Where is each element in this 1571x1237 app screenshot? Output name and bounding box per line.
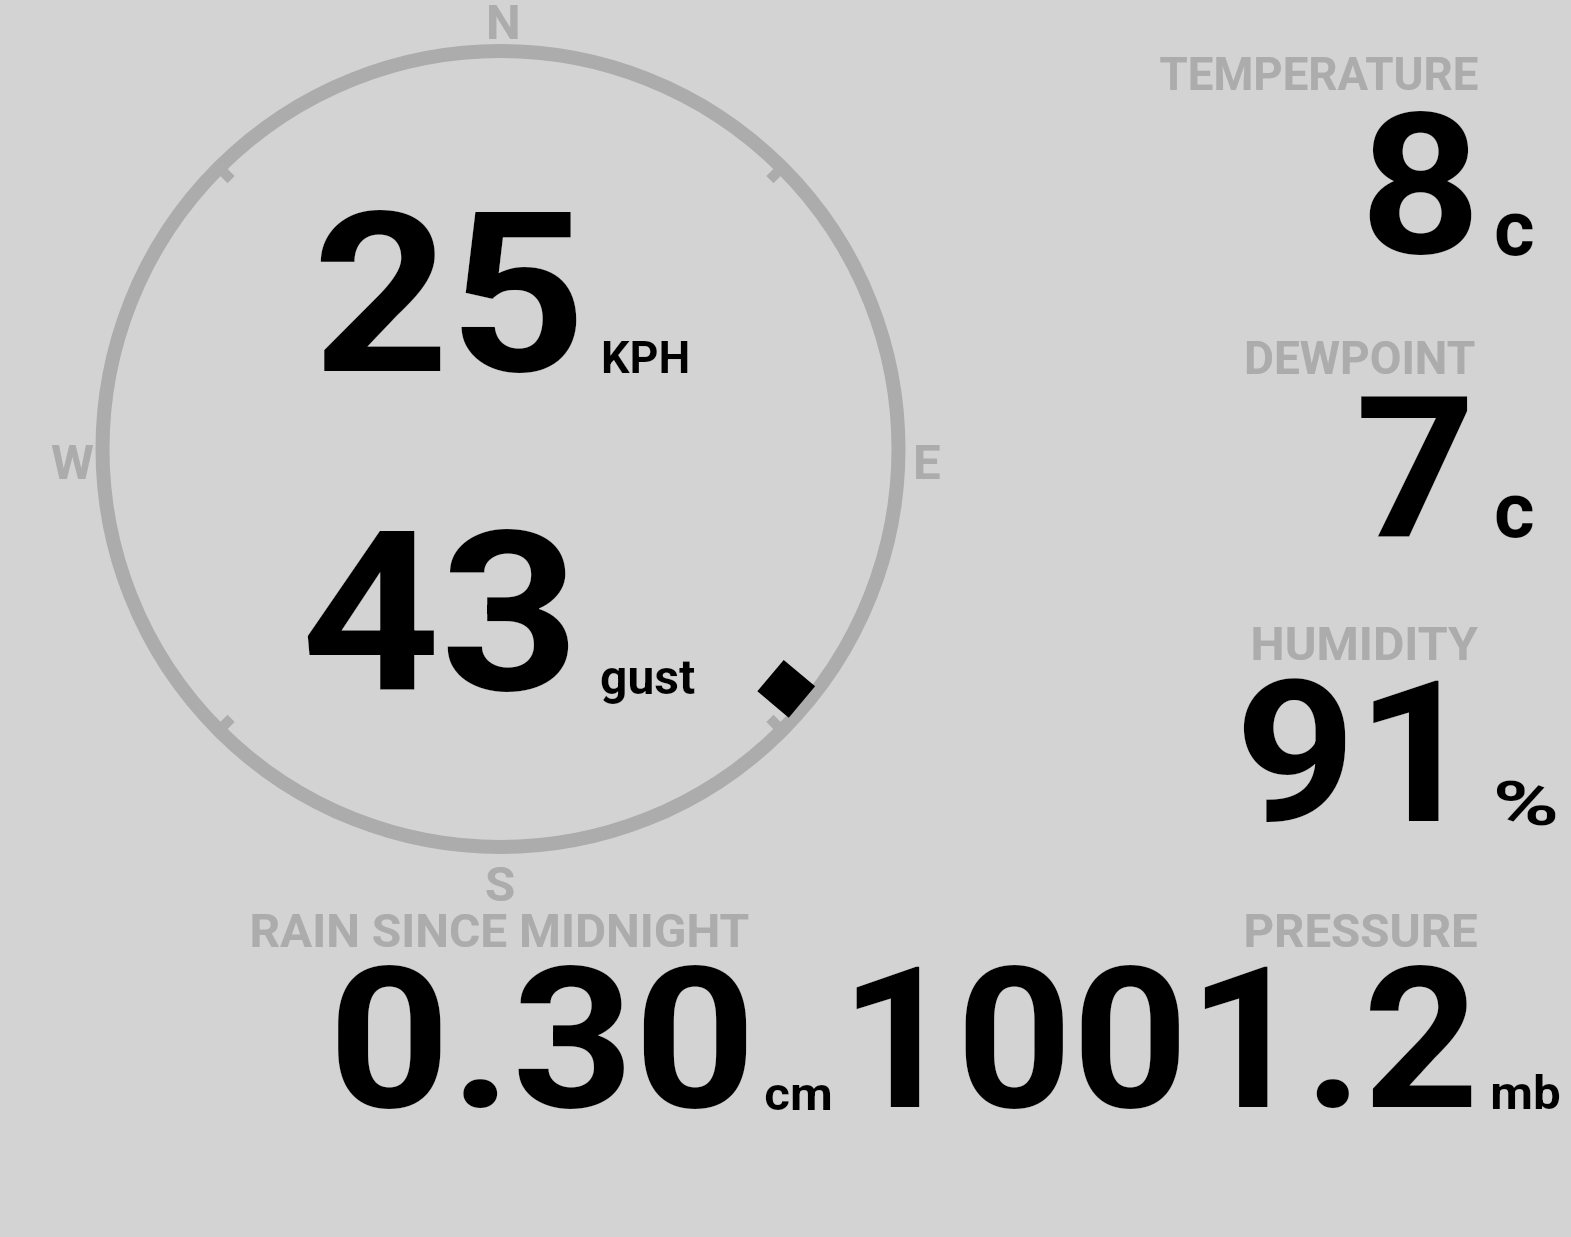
staticText: 8 <box>1360 70 1482 301</box>
staticText: HUMIDITY <box>1251 617 1478 671</box>
staticText: 43 <box>301 484 580 744</box>
button[interactable]: Temperature 8 degrees C <box>1140 40 1560 270</box>
staticText: S <box>485 856 516 913</box>
staticText: DEWPOINT <box>1244 331 1476 385</box>
staticText: gust <box>600 649 696 705</box>
button[interactable]: Rain since midnight 0.30 cm <box>240 905 850 1120</box>
staticText: 0.30 <box>328 925 757 1155</box>
staticText: E <box>913 434 941 491</box>
staticText: N <box>486 0 521 51</box>
button[interactable]: Wind speed and direction <box>100 50 900 850</box>
staticText: 91 <box>1235 638 1478 869</box>
staticText: c <box>1494 465 1535 556</box>
staticText: TEMPERATURE <box>1160 47 1478 101</box>
staticText: c <box>1494 183 1535 274</box>
staticText: KPH <box>601 331 691 384</box>
staticText: 7 <box>1355 353 1477 584</box>
staticText: mb <box>1490 1065 1562 1120</box>
staticText: 1001.2 <box>840 925 1480 1155</box>
staticText: PRESSURE <box>1244 904 1478 958</box>
button[interactable]: Dewpoint 7 degrees C <box>1140 320 1560 550</box>
staticText: RAIN SINCE MIDNIGHT <box>249 904 750 958</box>
button[interactable]: Humidity 91 percent <box>1140 605 1560 835</box>
staticText: cm <box>764 1066 834 1121</box>
button[interactable]: Pressure 1001.2 mb <box>850 905 1565 1120</box>
staticText: W <box>51 434 94 491</box>
staticText: 25 <box>312 165 586 425</box>
staticText: % <box>1493 767 1559 840</box>
